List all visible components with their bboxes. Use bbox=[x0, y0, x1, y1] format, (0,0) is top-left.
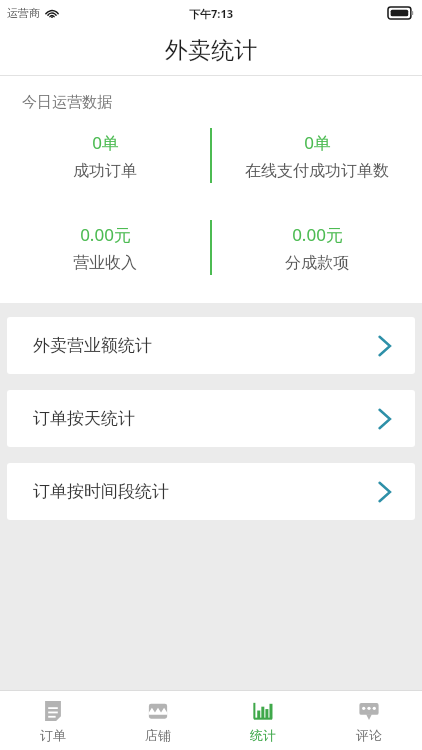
staticText: 统计 bbox=[250, 727, 276, 743]
staticText: 订单按时间段统计 bbox=[33, 481, 169, 502]
staticText: 外卖统计 bbox=[165, 36, 257, 65]
staticText: 运营商 bbox=[7, 6, 40, 20]
staticText: 分成款项 bbox=[285, 253, 349, 273]
staticText: 店铺 bbox=[145, 727, 171, 743]
staticText: 0单 bbox=[92, 131, 119, 154]
staticText: 订单按天统计 bbox=[33, 408, 135, 429]
button[interactable]: 统计 bbox=[210, 691, 316, 750]
staticText: 0单 bbox=[304, 131, 331, 154]
staticText: 外卖营业额统计 bbox=[33, 335, 152, 356]
staticText: 营业收入 bbox=[73, 253, 137, 273]
staticText: 成功订单 bbox=[73, 161, 137, 181]
button[interactable]: 外卖营业额统计 bbox=[7, 317, 415, 374]
staticText: 0.00元 bbox=[292, 223, 343, 246]
staticText: 在线支付成功订单数 bbox=[245, 161, 389, 181]
button[interactable]: 订单按时间段统计 bbox=[7, 463, 415, 520]
staticText: 下午7:13 bbox=[189, 6, 233, 21]
staticText: 评论 bbox=[356, 727, 382, 743]
button[interactable]: 店铺 bbox=[105, 691, 210, 750]
button[interactable]: 订单 bbox=[0, 691, 105, 750]
staticText: 订单 bbox=[40, 727, 66, 743]
button[interactable]: 评论 bbox=[316, 691, 422, 750]
staticText: 0.00元 bbox=[80, 223, 131, 246]
button[interactable]: 订单按天统计 bbox=[7, 390, 415, 447]
staticText: 今日运营数据 bbox=[22, 93, 112, 112]
